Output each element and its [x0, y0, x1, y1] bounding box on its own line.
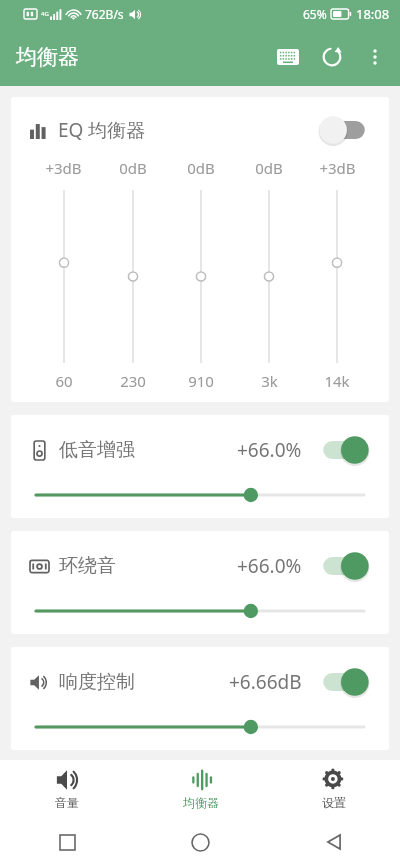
staticText: 均衡器 — [16, 44, 79, 70]
button[interactable]: Refresh — [310, 35, 354, 79]
button[interactable]: 设置 — [267, 760, 400, 818]
button[interactable]: Back — [267, 818, 400, 866]
staticText: 65% — [303, 6, 327, 22]
button[interactable] — [36, 600, 364, 622]
staticText: 60 — [55, 371, 73, 391]
staticText: 4G — [41, 10, 49, 18]
staticText: 18:08 — [356, 5, 390, 23]
staticText: 均衡器 — [183, 795, 219, 810]
button[interactable]: On — [318, 551, 370, 581]
button[interactable]: 响度控制 — [11, 647, 389, 750]
staticText: 3k — [261, 371, 278, 391]
staticText: +66.0% — [237, 553, 302, 579]
staticText: 音量 — [55, 795, 79, 810]
button[interactable]: Home — [134, 818, 267, 866]
button[interactable] — [36, 716, 364, 738]
staticText: 设置 — [322, 795, 346, 810]
button[interactable]: More options — [354, 36, 396, 78]
staticText: 0dB — [255, 158, 283, 178]
staticText: EQ 均衡器 — [58, 117, 146, 143]
staticText: 环绕音 — [59, 554, 116, 578]
staticText: +6.66dB — [229, 669, 302, 695]
staticText: 0dB — [187, 158, 215, 178]
button[interactable]: EQ 均衡器 — [11, 97, 389, 402]
staticText: +3dB — [45, 158, 82, 178]
staticText: 0dB — [119, 158, 147, 178]
staticText: 230 — [120, 371, 146, 391]
staticText: 910 — [188, 371, 214, 391]
button[interactable]: Keyboard — [266, 35, 310, 79]
button[interactable]: 低音增强 — [11, 415, 389, 518]
staticText: 低音增强 — [59, 438, 135, 462]
staticText: 响度控制 — [59, 670, 135, 694]
button[interactable] — [36, 484, 364, 506]
button[interactable]: 音量 — [0, 760, 134, 818]
button[interactable]: On — [318, 435, 370, 465]
button[interactable]: 均衡器 — [134, 760, 267, 818]
staticText: +66.0% — [237, 437, 302, 463]
staticText: 14k — [324, 371, 350, 391]
staticText: 762B/s — [85, 6, 124, 22]
button[interactable]: On — [318, 667, 370, 697]
button[interactable]: Recents — [0, 818, 134, 866]
staticText: +3dB — [319, 158, 356, 178]
button[interactable]: 环绕音 — [11, 531, 389, 634]
button[interactable]: Off — [318, 115, 370, 145]
